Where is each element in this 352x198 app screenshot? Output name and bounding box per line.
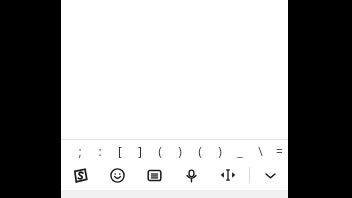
button[interactable]: ;: [70, 140, 90, 161]
button[interactable]: _: [230, 140, 250, 161]
button[interactable]: SwiftKey keyboard menu: [69, 164, 91, 186]
staticText: _: [237, 143, 243, 159]
staticText: ]: [138, 143, 142, 159]
button[interactable]: :: [90, 140, 110, 161]
button[interactable]: ): [170, 140, 190, 161]
button[interactable]: Keyboard settings: [143, 164, 165, 186]
staticText: (: [198, 143, 202, 159]
button[interactable]: Voice input: [180, 164, 202, 186]
staticText: =: [276, 143, 283, 159]
button[interactable]: [: [110, 140, 130, 161]
button[interactable]: Cursor control: [217, 164, 239, 186]
button[interactable]: \: [250, 140, 270, 161]
button[interactable]: Hide keyboard: [259, 164, 281, 186]
staticText: [: [118, 143, 122, 159]
button[interactable]: Emoji: [106, 164, 128, 186]
button[interactable]: (: [150, 140, 170, 161]
staticText: ): [178, 143, 182, 159]
staticText: (: [158, 143, 162, 159]
button[interactable]: (: [190, 140, 210, 161]
button[interactable]: ]: [130, 140, 150, 161]
button[interactable]: =: [270, 140, 288, 161]
staticText: ): [218, 143, 222, 159]
staticText: ;: [78, 143, 82, 159]
button[interactable]: ): [210, 140, 230, 161]
staticText: \: [258, 143, 263, 159]
staticText: :: [98, 143, 102, 159]
